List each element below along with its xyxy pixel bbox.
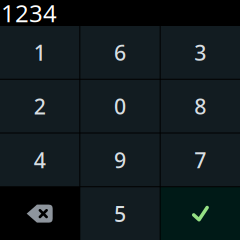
- staticText: 0: [114, 92, 126, 120]
- staticText: 3: [194, 38, 206, 66]
- button[interactable]: 8: [161, 80, 240, 133]
- button[interactable]: 6: [80, 26, 160, 79]
- staticText: 2: [34, 92, 46, 120]
- staticText: 1234: [1, 0, 57, 29]
- staticText: 5: [114, 199, 126, 228]
- button[interactable]: 4: [0, 133, 79, 186]
- button[interactable]: Confirm: [161, 187, 240, 240]
- button[interactable]: 9: [80, 133, 160, 186]
- button[interactable]: 2: [0, 80, 79, 133]
- button[interactable]: 3: [161, 26, 240, 79]
- button[interactable]: 5: [80, 187, 160, 240]
- button[interactable]: 0: [80, 80, 160, 133]
- button[interactable]: 7: [161, 133, 240, 186]
- staticText: 4: [34, 146, 46, 174]
- staticText: 7: [194, 146, 206, 174]
- staticText: 6: [114, 38, 126, 66]
- staticText: 1: [34, 38, 46, 66]
- button[interactable]: Delete: [0, 187, 79, 240]
- button[interactable]: 1: [0, 26, 79, 79]
- staticText: 9: [114, 146, 126, 174]
- staticText: 8: [194, 92, 206, 120]
